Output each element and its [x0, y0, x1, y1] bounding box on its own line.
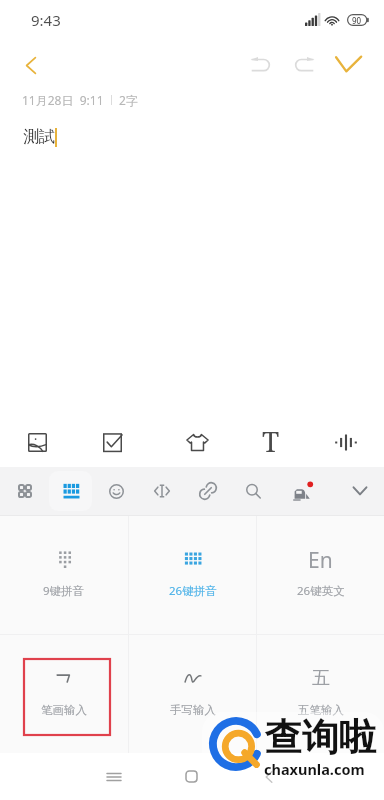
staticText: 查询啦 [265, 714, 376, 761]
button[interactable]: Undo [240, 44, 280, 84]
button[interactable]: 手写输入 [129, 635, 256, 753]
staticText: En [308, 546, 333, 570]
button[interactable]: Back [245, 753, 293, 800]
button[interactable]: ai [279, 467, 323, 515]
button[interactable]: emoji [94, 467, 138, 515]
button[interactable]: down [338, 467, 382, 515]
button[interactable]: shirt [167, 419, 227, 465]
button[interactable]: Redo [284, 44, 324, 84]
staticText: 手写输入 [170, 703, 216, 717]
button[interactable]: cursor [140, 467, 184, 515]
button[interactable]: kbd [49, 467, 93, 515]
staticText: 26键英文 [297, 583, 345, 599]
staticText: T [262, 422, 280, 460]
staticText: 五 [312, 667, 330, 690]
staticText: 笔画输入 [41, 703, 87, 717]
button[interactable]: Home [167, 753, 215, 800]
button[interactable]: todo [82, 419, 142, 465]
button[interactable]: Done [328, 44, 368, 84]
button[interactable]: 五 [257, 635, 384, 753]
button[interactable]: search [231, 467, 275, 515]
button[interactable]: voice [316, 419, 376, 465]
button[interactable]: 9键拼音 [0, 516, 128, 634]
staticText: 26键拼音 [169, 583, 217, 599]
staticText: 五笔输入 [298, 703, 344, 717]
button[interactable]: image [7, 419, 67, 465]
staticText: 測試 [23, 127, 55, 147]
button[interactable]: En [257, 516, 384, 634]
staticText: 2字 [119, 92, 138, 108]
button[interactable]: Back [11, 45, 51, 85]
staticText: 9键拼音 [43, 583, 85, 599]
button[interactable]: grid [3, 467, 47, 515]
button[interactable]: clip [186, 467, 230, 515]
button[interactable]: 26键拼音 [129, 516, 256, 634]
button[interactable]: 笔画输入 [0, 635, 128, 753]
staticText: 90 [352, 15, 362, 26]
staticText: chaxunla.com [264, 759, 365, 779]
button[interactable]: T [242, 419, 302, 465]
staticText: 9:43 [31, 10, 61, 30]
staticText: 11月28日 9:11 [22, 92, 104, 108]
button[interactable]: Recents [90, 753, 138, 800]
